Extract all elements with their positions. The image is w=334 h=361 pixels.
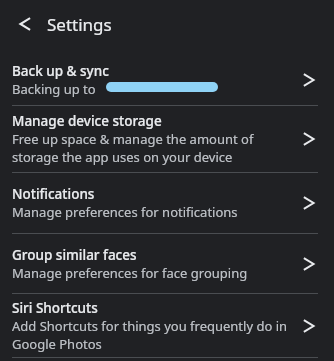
staticText: Group similar faces <box>12 246 137 264</box>
button[interactable]: Group similar faces <box>0 234 334 293</box>
staticText: Back up & sync <box>12 62 109 80</box>
button[interactable]: Manage device storage <box>0 106 334 172</box>
button[interactable]: Back <box>6 6 42 42</box>
staticText: Free up space & manage the amount of sto… <box>12 130 290 166</box>
staticText: Settings <box>47 13 112 36</box>
staticText: Siri Shortcuts <box>12 299 98 317</box>
other: Notifications <box>296 189 324 217</box>
staticText: Notifications <box>12 185 95 203</box>
staticText: Manage preferences for face grouping <box>12 264 248 282</box>
other: Back up & sync <box>296 66 324 94</box>
other: Group similar faces <box>296 250 324 278</box>
staticText: Backing up to <box>12 80 164 98</box>
button[interactable]: Back up & sync <box>0 55 334 105</box>
staticText: Add Shortcuts for things you frequently … <box>12 317 290 353</box>
other: Manage device storage <box>296 125 324 153</box>
staticText: Manage device storage <box>12 112 162 130</box>
button[interactable]: Siri Shortcuts <box>0 294 334 357</box>
staticText: Manage preferences for notifications <box>12 203 238 221</box>
button[interactable]: Notifications <box>0 173 334 233</box>
other: Siri Shortcuts <box>296 312 324 340</box>
